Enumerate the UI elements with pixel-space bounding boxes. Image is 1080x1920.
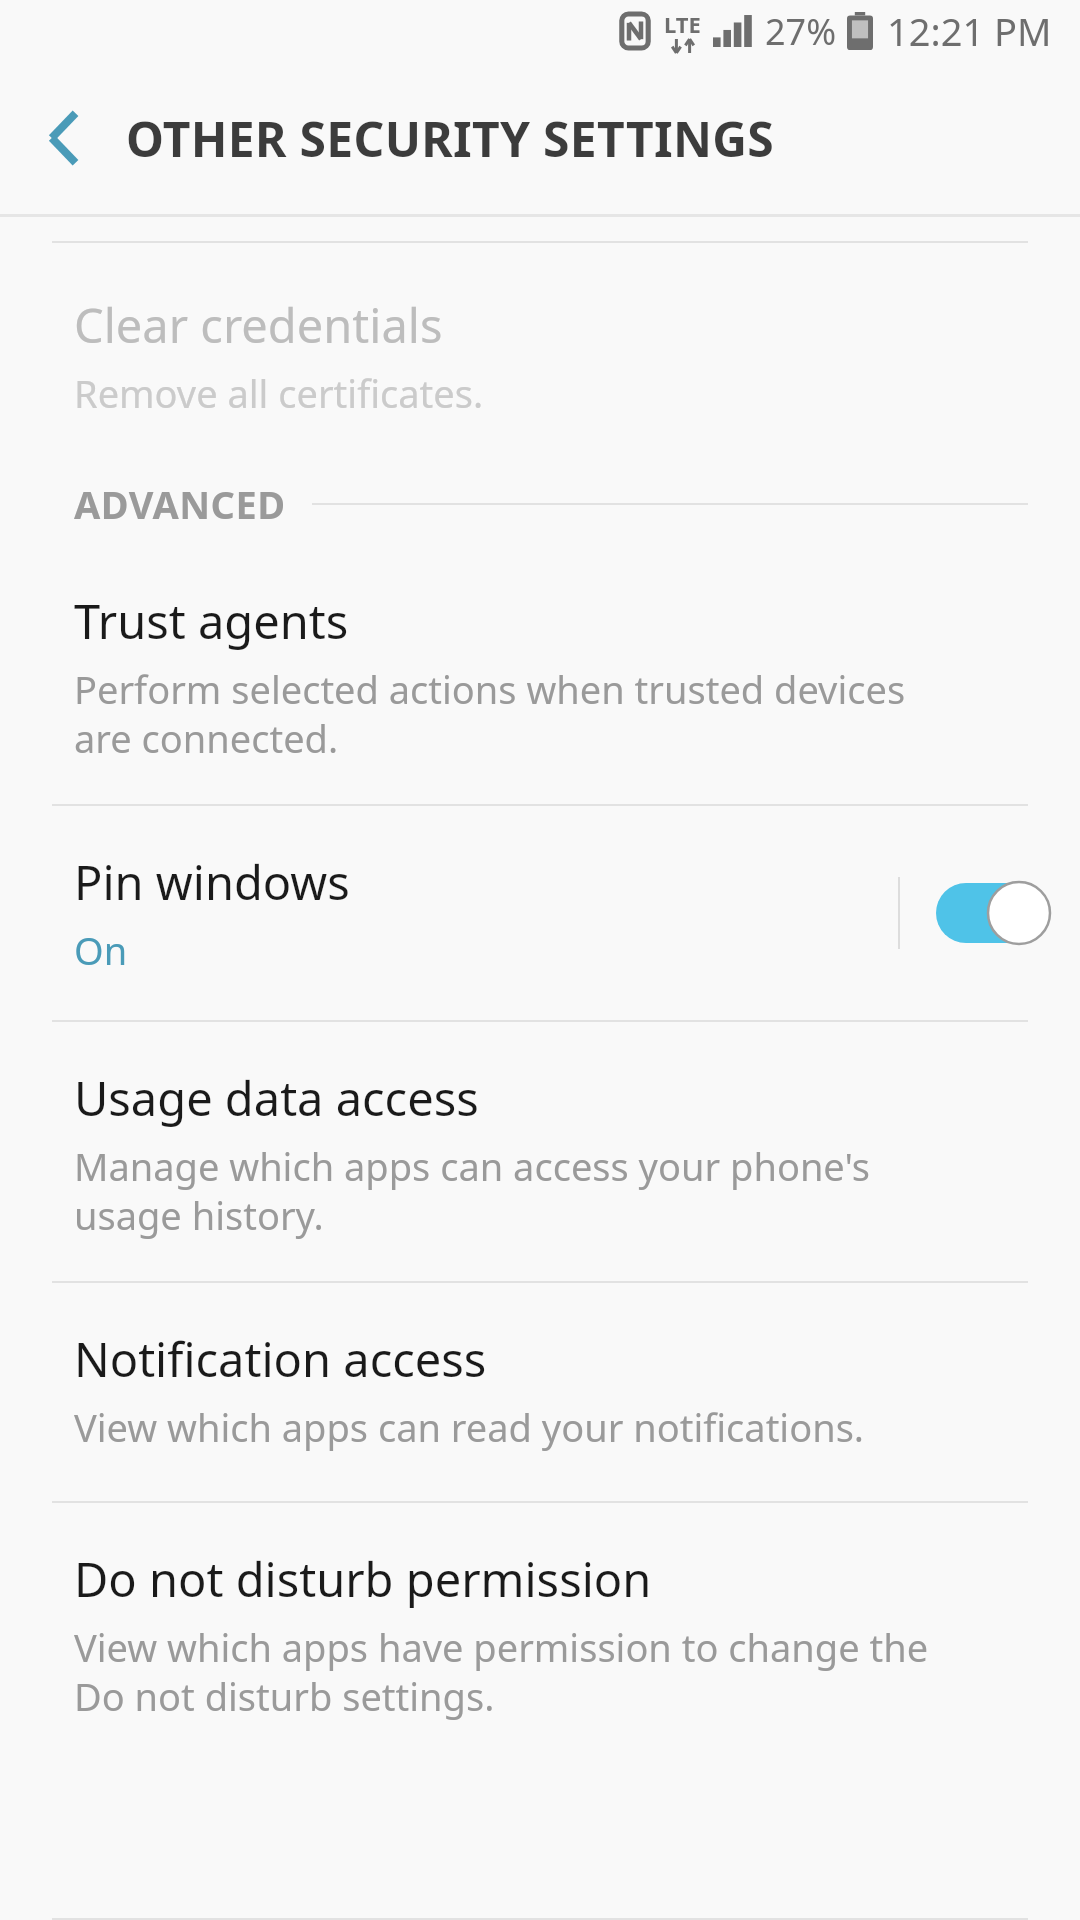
staticText: Notification access [74, 1327, 487, 1391]
staticText: Perform selected actions when trusted de… [74, 663, 906, 764]
button[interactable]: Back [26, 100, 102, 176]
staticText: Remove all certificates. [74, 367, 484, 419]
staticText: Pin windows [74, 850, 350, 914]
staticText: 27% [765, 7, 837, 56]
button[interactable]: Pin windows [0, 806, 1080, 1020]
staticText: Clear credentials [74, 293, 443, 357]
button[interactable]: Pin windows toggle [898, 877, 1080, 949]
staticText: Trust agents [74, 589, 349, 653]
button[interactable]: Notification access [0, 1283, 1080, 1501]
staticText: View which apps have permission to chang… [74, 1621, 929, 1722]
staticText: LTE [664, 9, 701, 39]
staticText: 12:21 PM [887, 5, 1052, 57]
staticText: View which apps can read your notificati… [74, 1401, 865, 1453]
staticText: Usage data access [74, 1066, 479, 1130]
button[interactable]: Usage data access [0, 1022, 1080, 1281]
staticText: Do not disturb permission [74, 1547, 652, 1611]
button[interactable]: Do not disturb permission [0, 1503, 1080, 1762]
staticText: Manage which apps can access your phone'… [74, 1140, 871, 1241]
button[interactable]: Trust agents [0, 543, 1080, 804]
staticText: OTHER SECURITY SETTINGS [126, 106, 775, 171]
staticText: ADVANCED [74, 478, 286, 530]
staticText: On [74, 924, 128, 976]
